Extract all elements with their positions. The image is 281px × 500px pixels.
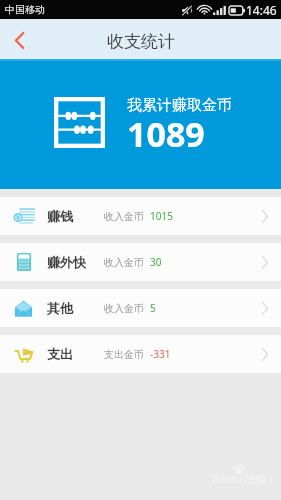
staticText: 我累计赚取金币	[127, 96, 232, 115]
staticText: Baidu 经验	[212, 471, 267, 486]
staticText: 收支统计	[107, 31, 175, 52]
staticText: 收入金币	[104, 210, 144, 223]
staticText: 1015	[150, 209, 173, 223]
staticText: 1089	[127, 111, 205, 157]
staticText: 5	[150, 301, 156, 315]
staticText: 14:46	[246, 2, 277, 18]
staticText: 中国移动	[5, 3, 45, 16]
staticText: 30	[150, 255, 162, 269]
button[interactable]: 赚钱	[0, 197, 281, 235]
button[interactable]: 支出	[0, 335, 281, 373]
staticText: 收入金币	[104, 302, 144, 315]
staticText: 收入金币	[104, 256, 144, 269]
staticText: -331	[150, 347, 171, 361]
button[interactable]: 其他	[0, 289, 281, 327]
staticText: 支出金币	[104, 348, 144, 361]
button[interactable]: 赚外快	[0, 243, 281, 281]
staticText: 赚外快	[47, 254, 86, 270]
button[interactable]: Back	[0, 19, 40, 59]
staticText: 支出	[47, 346, 73, 362]
staticText: 其他	[47, 300, 73, 316]
staticText: 赚钱	[47, 208, 73, 224]
